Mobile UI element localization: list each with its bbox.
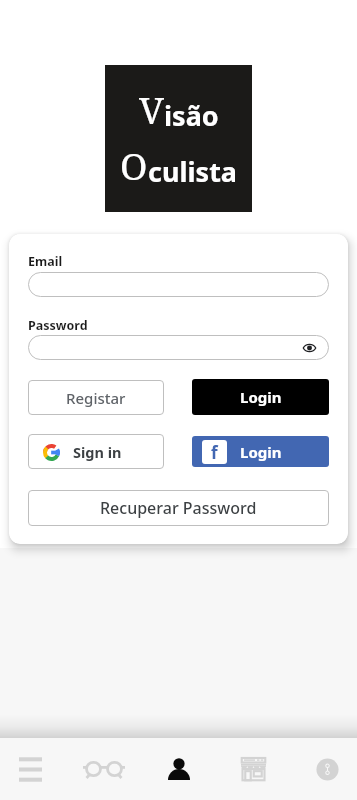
button[interactable]: More options	[315, 738, 339, 800]
staticText: Login	[240, 387, 282, 407]
staticText: Login	[240, 442, 282, 462]
button[interactable]: Glasses	[92, 738, 116, 800]
staticText: V	[139, 84, 164, 134]
staticText: O	[120, 140, 148, 190]
button[interactable]: Recuperar Password	[28, 490, 329, 526]
button[interactable]: Login	[192, 379, 329, 415]
button[interactable]: f	[192, 436, 329, 467]
button[interactable]: Store	[241, 738, 265, 800]
button[interactable]: Profile	[167, 738, 191, 800]
button[interactable]: Show password	[298, 337, 320, 359]
button[interactable]: Registar	[28, 380, 164, 415]
staticText: Password	[28, 317, 88, 330]
staticText: isão	[164, 97, 219, 134]
staticText: culista	[148, 153, 238, 190]
staticText: Email	[28, 253, 63, 266]
staticText: f	[211, 441, 218, 464]
button[interactable]: Sign in	[28, 434, 164, 469]
button[interactable]: Menu	[18, 738, 42, 800]
button[interactable]	[28, 272, 329, 297]
staticText: Registar	[66, 388, 126, 408]
staticText: Recuperar Password	[100, 497, 257, 519]
staticText: Sign in	[73, 442, 122, 462]
